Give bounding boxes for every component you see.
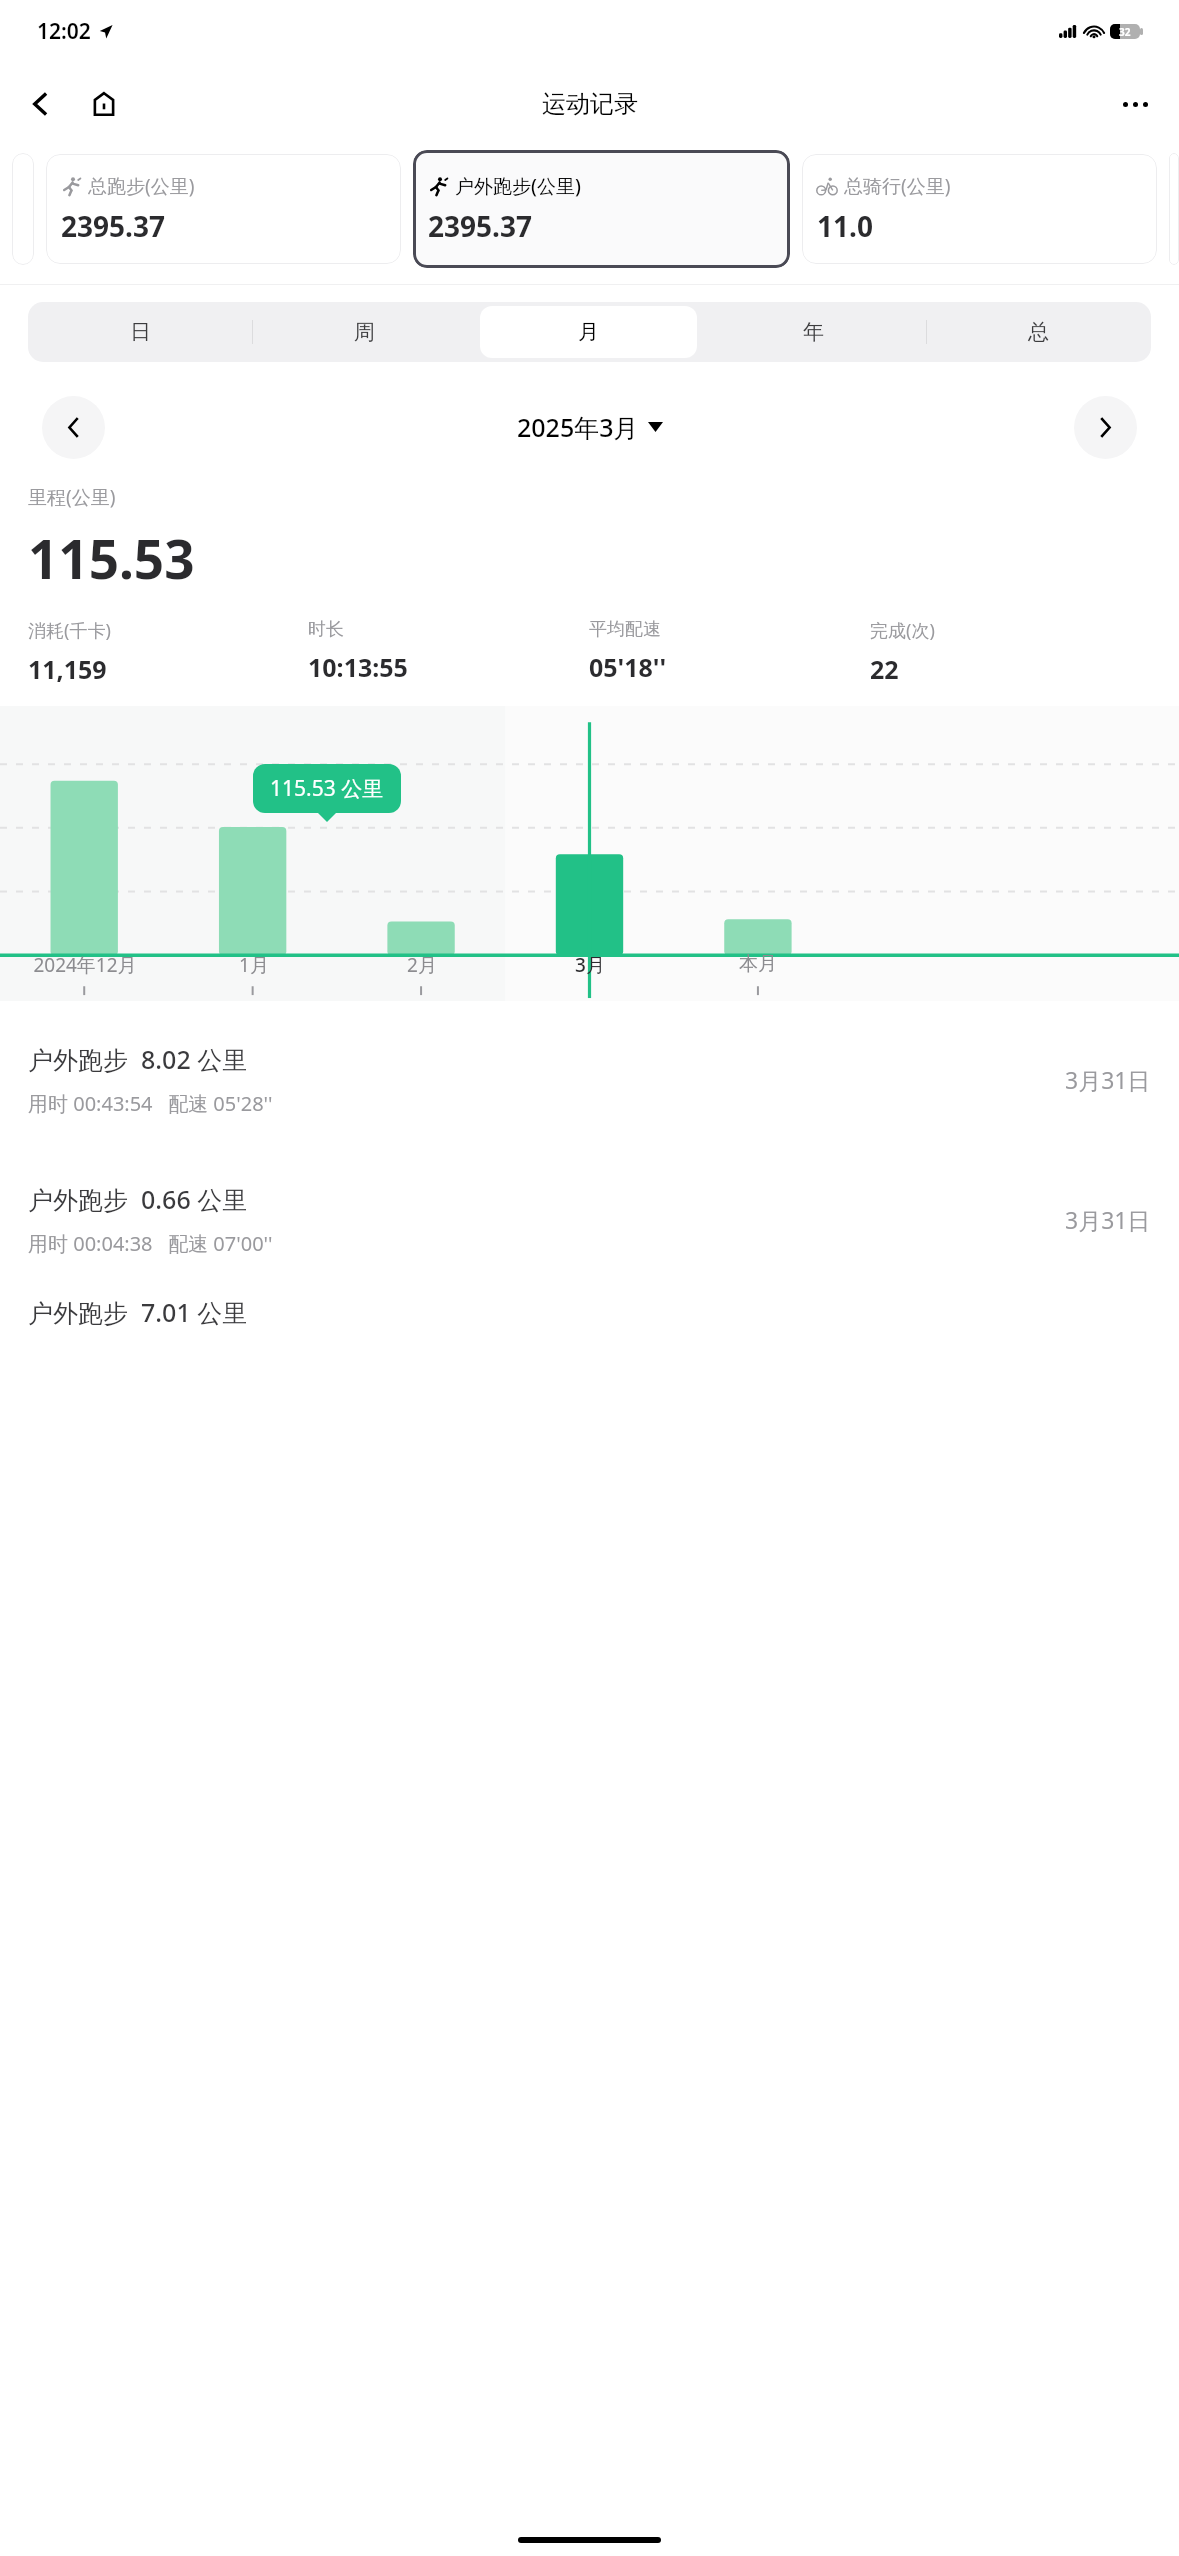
staticText: 消耗(千卡): [28, 618, 111, 643]
staticText: 11.0: [817, 207, 873, 245]
staticText: 3月31日: [1065, 1064, 1151, 1095]
staticText: 用时 00:43:54 配速 05'28'': [28, 1090, 273, 1117]
button[interactable]: 日: [32, 306, 248, 358]
button[interactable]: 户外跑步 0.66 公里: [0, 1149, 1179, 1289]
button[interactable]: 户外跑步 8.02 公里: [0, 1009, 1179, 1149]
staticText: 用时 00:04:38 配速 07'00'': [28, 1230, 273, 1257]
staticText: 2025年3月: [517, 410, 639, 444]
button[interactable]: 周: [256, 306, 472, 358]
staticText: 22: [870, 652, 899, 686]
staticText: 运动记录: [542, 89, 638, 119]
staticText: 月: [578, 319, 599, 345]
staticText: 平均配速: [589, 618, 661, 641]
button[interactable]: 年: [705, 306, 922, 358]
staticText: 周: [354, 319, 375, 345]
staticText: 户外跑步(公里): [455, 173, 581, 199]
staticText: 2月: [407, 952, 437, 978]
button[interactable]: 总骑行(公里): [802, 154, 1157, 264]
staticText: 时长: [308, 618, 344, 641]
button[interactable]: 总: [930, 306, 1147, 358]
staticText: 2395.37: [428, 207, 532, 245]
staticText: 完成(次): [870, 618, 935, 643]
staticText: 05'18'': [589, 650, 667, 684]
button[interactable]: 户外跑步(公里): [413, 150, 790, 268]
staticText: 11,159: [28, 652, 107, 686]
staticText: 户外跑步 7.01 公里: [28, 1295, 248, 1329]
staticText: 2395.37: [61, 207, 165, 245]
staticText: 1月: [239, 952, 269, 978]
staticText: 户外跑步 8.02 公里: [28, 1042, 248, 1076]
staticText: 3月: [575, 952, 605, 978]
staticText: 2024年12月: [33, 952, 137, 978]
staticText: 总骑行(公里): [844, 173, 951, 199]
button[interactable]: More options: [1109, 78, 1161, 130]
button[interactable]: Previous month: [42, 396, 105, 459]
staticText: 年: [803, 319, 824, 345]
button[interactable]: 2025年3月: [517, 410, 663, 444]
staticText: 12:02: [37, 17, 91, 46]
staticText: 10:13:55: [308, 650, 408, 684]
button[interactable]: Home: [80, 80, 128, 128]
staticText: 户外跑步 0.66 公里: [28, 1182, 248, 1216]
staticText: 总: [1028, 319, 1049, 345]
staticText: 本月: [739, 952, 777, 976]
staticText: 3月31日: [1065, 1204, 1151, 1235]
button[interactable]: 月: [480, 306, 697, 358]
button[interactable]: Back: [16, 80, 64, 128]
staticText: 115.53 公里: [270, 774, 384, 803]
button[interactable]: Next month: [1074, 396, 1137, 459]
button[interactable]: 总跑步(公里): [46, 154, 401, 264]
staticText: 115.53: [28, 522, 195, 594]
staticText: 日: [130, 319, 151, 345]
staticText: 32: [1119, 25, 1131, 39]
staticText: 总跑步(公里): [88, 173, 195, 199]
staticText: 里程(公里): [28, 484, 116, 510]
